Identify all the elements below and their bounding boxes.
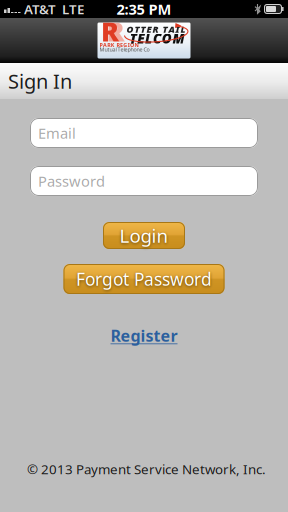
staticText: R	[101, 13, 119, 49]
button[interactable]: Forgot Password	[63, 264, 224, 294]
staticText: TELCOM	[129, 29, 184, 47]
button[interactable]: Register	[110, 325, 177, 346]
staticText: Login	[119, 223, 168, 248]
staticText: Register	[110, 325, 177, 346]
staticText: 2:35 PM	[116, 0, 171, 19]
staticText: Sign In	[8, 68, 72, 94]
staticText: Password	[38, 171, 105, 191]
staticText: R	[106, 13, 124, 49]
staticText: AT&T LTE	[24, 0, 84, 18]
staticText: © 2013 Payment Service Network, Inc.	[27, 460, 266, 478]
staticText: Forgot Password	[76, 267, 212, 290]
staticText: OTTER TAIL	[126, 23, 185, 35]
staticText: Mutual Telephone Co	[99, 46, 149, 53]
button[interactable]: Login	[103, 222, 185, 249]
staticText: Email	[38, 123, 76, 143]
staticText: PARK REGION	[99, 41, 138, 49]
